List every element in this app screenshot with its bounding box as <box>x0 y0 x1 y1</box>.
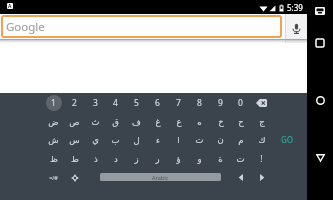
staticText: ق <box>112 117 119 127</box>
button[interactable]: Voice search <box>286 14 307 43</box>
staticText: ض <box>48 117 59 127</box>
staticText: ص <box>69 117 80 127</box>
button[interactable]: Back <box>312 150 328 166</box>
staticText: ذ <box>94 154 98 164</box>
button[interactable]: ن <box>210 130 231 149</box>
button[interactable]: Home <box>312 92 328 108</box>
staticText: ث <box>91 117 100 127</box>
staticText: 4 <box>113 97 118 109</box>
staticText: ش <box>48 135 59 145</box>
staticText: ه <box>197 117 202 127</box>
button[interactable]: ي <box>85 130 106 149</box>
staticText: ؤ <box>176 154 181 164</box>
staticText: 7 <box>176 97 181 109</box>
staticText: ف <box>132 117 141 127</box>
staticText: ن <box>217 135 224 145</box>
button[interactable]: Hide keyboard <box>312 3 328 19</box>
button[interactable]: ص <box>64 112 85 131</box>
button[interactable]: ه <box>189 112 210 131</box>
staticText: 1 <box>51 97 56 109</box>
button[interactable]: GO <box>272 130 303 149</box>
staticText: =/# <box>49 174 58 181</box>
staticText: 6 <box>155 97 160 109</box>
staticText: Arabic <box>152 174 169 181</box>
button[interactable]: ح <box>230 112 251 131</box>
staticText: ت <box>236 154 245 164</box>
button[interactable]: ر <box>147 149 168 168</box>
button[interactable]: ل <box>126 130 147 149</box>
button[interactable]: ك <box>251 130 272 149</box>
button[interactable]: 7 <box>168 93 189 112</box>
button[interactable]: ة <box>210 149 231 168</box>
button[interactable]: ظ <box>43 149 64 168</box>
staticText: س <box>69 135 80 145</box>
staticText: 9 <box>218 97 223 109</box>
button[interactable]: 1 <box>43 93 64 112</box>
button[interactable]: غ <box>147 112 168 131</box>
button[interactable]: ع <box>168 112 189 131</box>
button[interactable]: خ <box>210 112 231 131</box>
button[interactable]: ء <box>147 130 168 149</box>
staticText: 2 <box>72 97 77 109</box>
button[interactable]: 0 <box>230 93 251 112</box>
staticText: ! <box>260 153 263 165</box>
button[interactable]: Google <box>1 15 282 38</box>
button[interactable]: 3 <box>85 93 106 112</box>
staticText: غ <box>155 117 161 127</box>
staticText: A <box>8 3 12 9</box>
button[interactable]: ت <box>189 130 210 149</box>
button[interactable]: =/# <box>43 168 64 187</box>
staticText: 8 <box>197 97 202 109</box>
staticText: ز <box>134 154 139 164</box>
button[interactable]: Move cursor left <box>230 168 251 187</box>
staticText: GO <box>281 134 294 145</box>
button[interactable]: س <box>64 130 85 149</box>
button[interactable]: Move cursor right <box>251 168 272 187</box>
staticText: ط <box>71 154 79 164</box>
button[interactable]: ب <box>105 130 126 149</box>
button[interactable]: 5 <box>126 93 147 112</box>
button[interactable]: 2 <box>64 93 85 112</box>
staticText: ظ <box>50 154 58 164</box>
button[interactable]: Recent apps <box>312 35 328 51</box>
button[interactable]: ذ <box>85 149 106 168</box>
staticText: ي <box>92 135 99 145</box>
staticText: خ <box>218 117 224 127</box>
staticText: 5 <box>134 97 139 109</box>
button[interactable]: Backspace <box>251 93 272 112</box>
staticText: ج <box>259 117 265 127</box>
staticText: ح <box>238 117 244 127</box>
staticText: ك <box>258 135 266 145</box>
button[interactable]: 9 <box>210 93 231 112</box>
button[interactable]: ج <box>251 112 272 131</box>
button[interactable]: ا <box>168 130 189 149</box>
staticText: ع <box>176 117 182 127</box>
button[interactable]: Arabic <box>100 173 221 181</box>
button[interactable]: ق <box>105 112 126 131</box>
staticText: ا <box>177 135 180 145</box>
button[interactable]: ط <box>64 149 85 168</box>
button[interactable]: Settings <box>64 168 85 187</box>
staticText: 0 <box>238 97 243 109</box>
button[interactable]: م <box>230 130 251 149</box>
button[interactable]: ! <box>251 149 272 168</box>
button[interactable]: و <box>189 149 210 168</box>
staticText: ء <box>156 135 160 145</box>
staticText: 5:39 <box>287 2 303 13</box>
button[interactable]: ف <box>126 112 147 131</box>
button[interactable]: ش <box>43 130 64 149</box>
staticText: ب <box>111 135 120 145</box>
staticText: ة <box>218 154 223 164</box>
button[interactable]: ؤ <box>168 149 189 168</box>
staticText: م <box>238 135 244 145</box>
button[interactable]: 6 <box>147 93 168 112</box>
button[interactable]: ز <box>126 149 147 168</box>
staticText: ل <box>133 135 140 145</box>
button[interactable]: ض <box>43 112 64 131</box>
button[interactable]: 4 <box>105 93 126 112</box>
staticText: د <box>114 154 118 164</box>
button[interactable]: ث <box>85 112 106 131</box>
button[interactable]: د <box>105 149 126 168</box>
button[interactable]: ت <box>230 149 251 168</box>
button[interactable]: 8 <box>189 93 210 112</box>
